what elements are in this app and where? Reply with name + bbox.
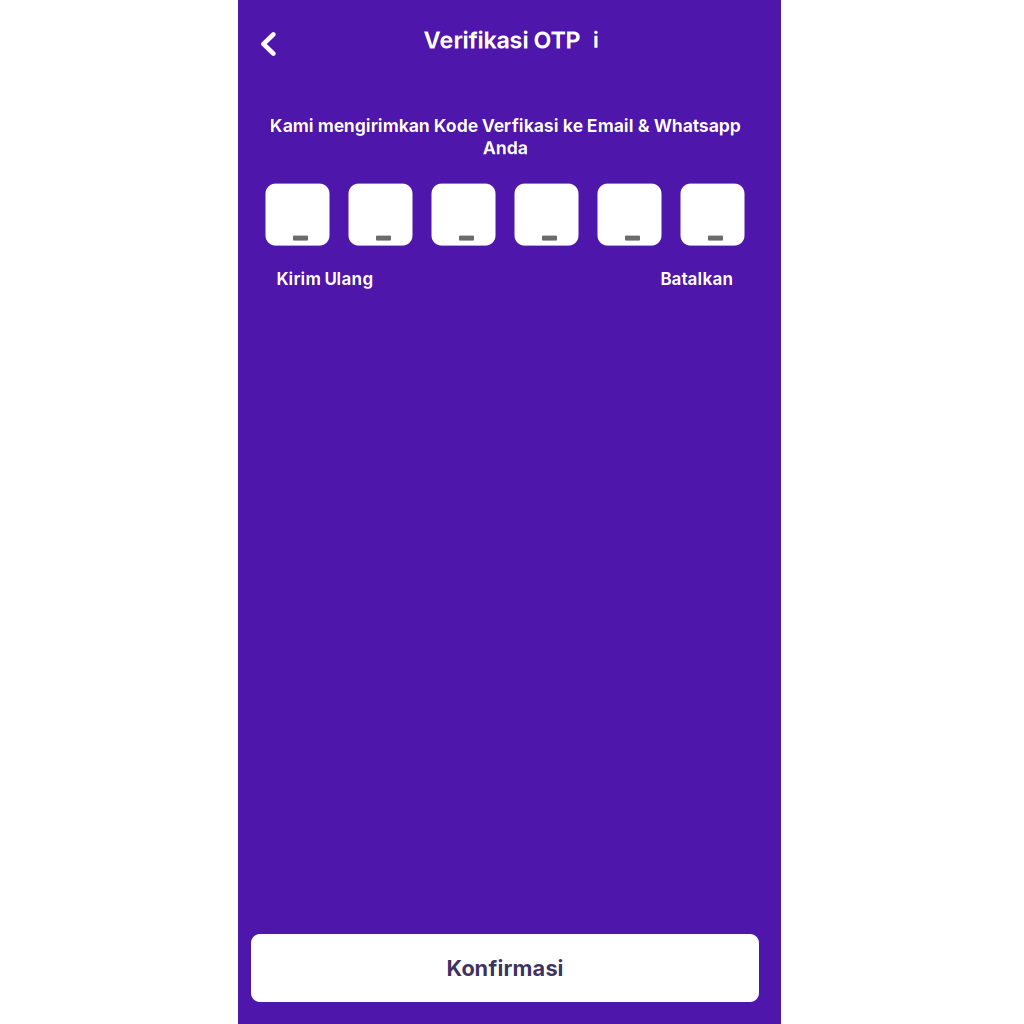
staticText: Kirim Ulang [276, 269, 373, 289]
button[interactable]: Kirim Ulang [276, 263, 373, 295]
staticText: i [593, 27, 599, 53]
staticText: Batalkan [660, 269, 733, 289]
staticText: Verifikasi OTP [423, 26, 580, 54]
button[interactable]: Back [251, 19, 288, 61]
button[interactable]: Batalkan [660, 263, 733, 295]
button[interactable]: Konfirmasi [251, 934, 759, 1002]
staticText: Konfirmasi [446, 955, 563, 981]
button[interactable]: Information [588, 24, 604, 56]
staticText: Kami mengirimkan Kode Verfikasi ke Email… [269, 115, 740, 159]
